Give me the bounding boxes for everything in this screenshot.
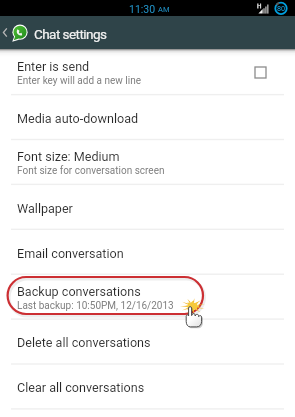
staticText: Delete all conversations	[17, 335, 151, 350]
staticText: 11:30	[129, 3, 156, 15]
button[interactable]: Backup conversations	[0, 274, 295, 319]
button[interactable]: Enter is send	[0, 49, 295, 94]
staticText: Enter key will add a new line	[17, 75, 141, 87]
button[interactable]: Delete all conversations	[0, 318, 295, 363]
staticText: Email conversation	[17, 246, 124, 261]
button[interactable]: Font size: Medium	[0, 139, 295, 184]
button[interactable]: Media auto-download	[0, 94, 295, 139]
staticText: AM	[158, 5, 170, 14]
staticText: Enter is send	[17, 59, 90, 74]
staticText: Wallpaper	[17, 201, 73, 216]
staticText: Media auto-download	[17, 111, 139, 126]
staticText: Chat settings	[34, 26, 107, 42]
staticText: Clear all conversations	[17, 380, 145, 395]
button[interactable]: Email conversation	[0, 229, 295, 274]
staticText: H	[257, 2, 262, 9]
staticText: Font size for conversation screen	[17, 165, 165, 177]
staticText: Font size: Medium	[17, 149, 120, 164]
button[interactable]: Back	[0, 16, 10, 49]
staticText: Backup conversations	[17, 284, 141, 299]
staticText: 80	[277, 4, 286, 12]
button[interactable]: Clear all conversations	[0, 363, 295, 408]
button[interactable]: Wallpaper	[0, 184, 295, 229]
staticText: Last backup: 10:50PM, 12/16/2013	[17, 300, 174, 312]
